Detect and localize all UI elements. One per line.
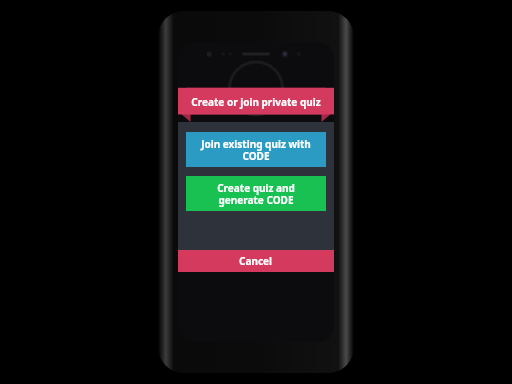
staticText: Join existing quiz with CODE xyxy=(201,137,311,163)
button[interactable]: Create quiz and generate CODE xyxy=(186,176,326,211)
button[interactable]: Join existing quiz with CODE xyxy=(186,132,326,167)
staticText: Create quiz and generate CODE xyxy=(217,181,295,207)
button[interactable]: Create or join private quiz xyxy=(178,84,334,122)
button[interactable]: Cancel xyxy=(178,250,334,272)
staticText: Cancel xyxy=(239,254,273,268)
staticText: Create or join private quiz xyxy=(191,95,321,109)
